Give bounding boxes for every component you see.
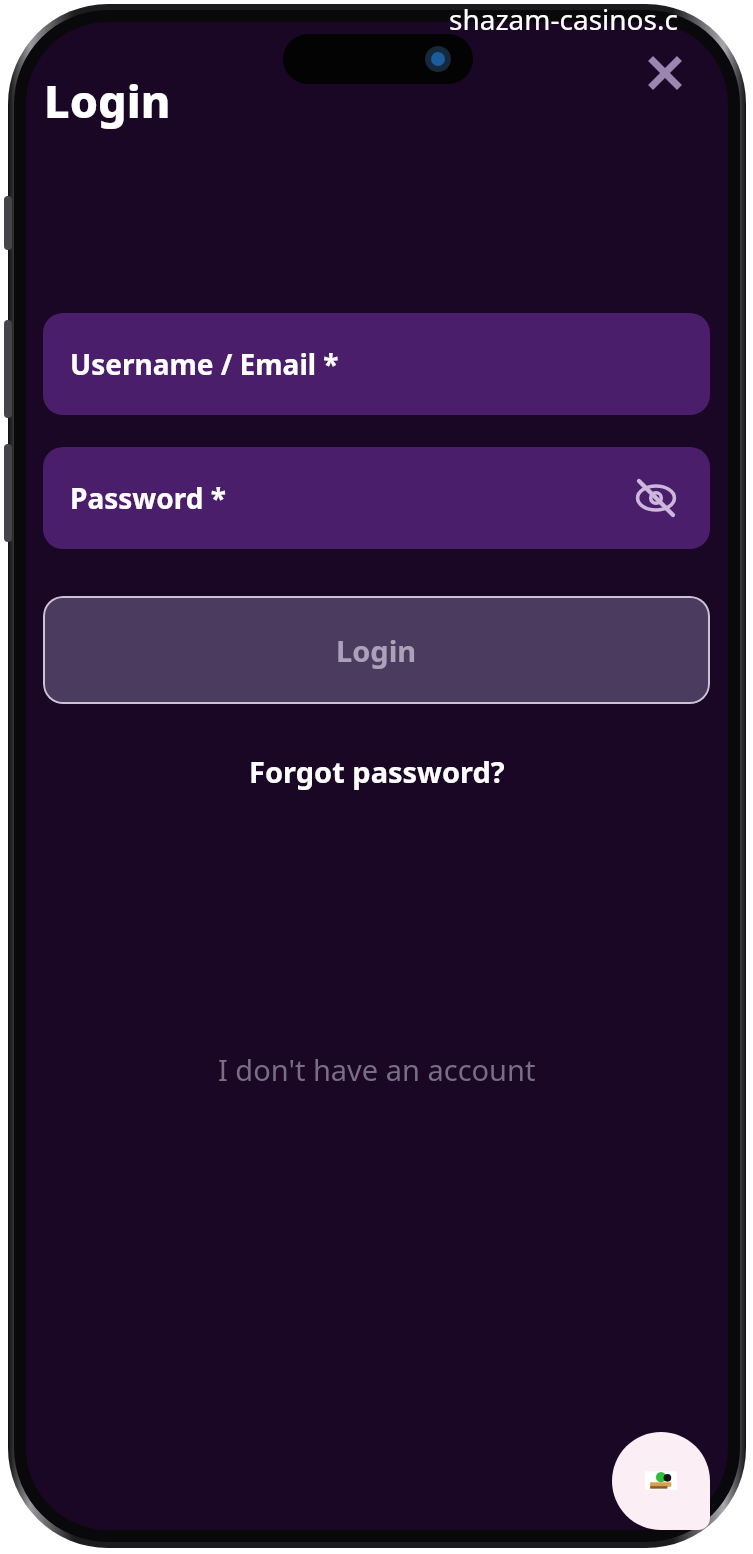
button[interactable]: I don't have an account	[185, 1042, 568, 1096]
staticText: Username / Email *	[70, 345, 339, 383]
staticText: Forgot password?	[249, 752, 505, 791]
button[interactable]: Close	[630, 38, 700, 108]
staticText: Login	[336, 631, 417, 670]
staticText: I don't have an account	[218, 1050, 536, 1089]
button[interactable]: Forgot password?	[234, 744, 519, 798]
button[interactable]: Username / Email *	[43, 313, 710, 415]
button[interactable]: Password *	[43, 447, 710, 549]
button[interactable]: Support chat	[612, 1432, 710, 1530]
staticText: Login	[44, 70, 171, 131]
button[interactable]: Show password	[624, 466, 688, 530]
staticText: Password *	[70, 479, 226, 517]
staticText: shazam-casinos.c	[449, 0, 678, 38]
button[interactable]: Login	[43, 596, 710, 704]
